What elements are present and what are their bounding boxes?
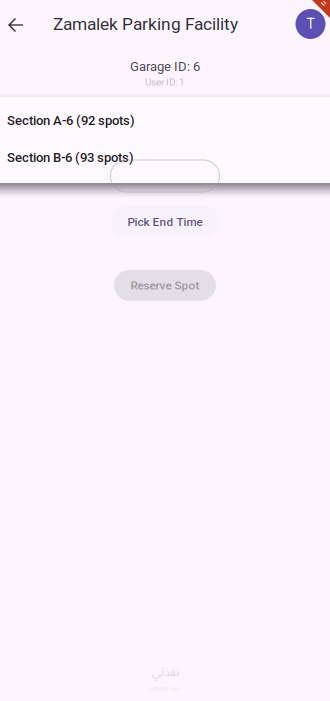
button[interactable]: Section B-6 (93 spots) [0,139,330,176]
button[interactable]: Pick Start Time [110,160,219,192]
staticText: T [306,16,314,32]
staticText: Zamalek Parking Facility [53,14,238,34]
button[interactable]: Section A-6 (92 spots) [0,102,330,139]
staticText: Pick End Time [127,215,202,229]
button[interactable]: Account [291,0,330,48]
button[interactable]: Reserve Spot [114,270,216,301]
staticText: nafezly.com [149,685,180,692]
staticText: Reserve Spot [130,278,199,292]
staticText: Section A-6 (92 spots) [7,113,135,128]
staticText: Garage ID: 6 [130,59,200,74]
button[interactable]: Pick End Time [110,206,219,238]
button[interactable]: Back [0,0,46,48]
staticText: نفذلي [151,659,178,685]
staticText: Section B-6 (93 spots) [7,150,134,165]
staticText: User ID: 1 [145,76,185,88]
